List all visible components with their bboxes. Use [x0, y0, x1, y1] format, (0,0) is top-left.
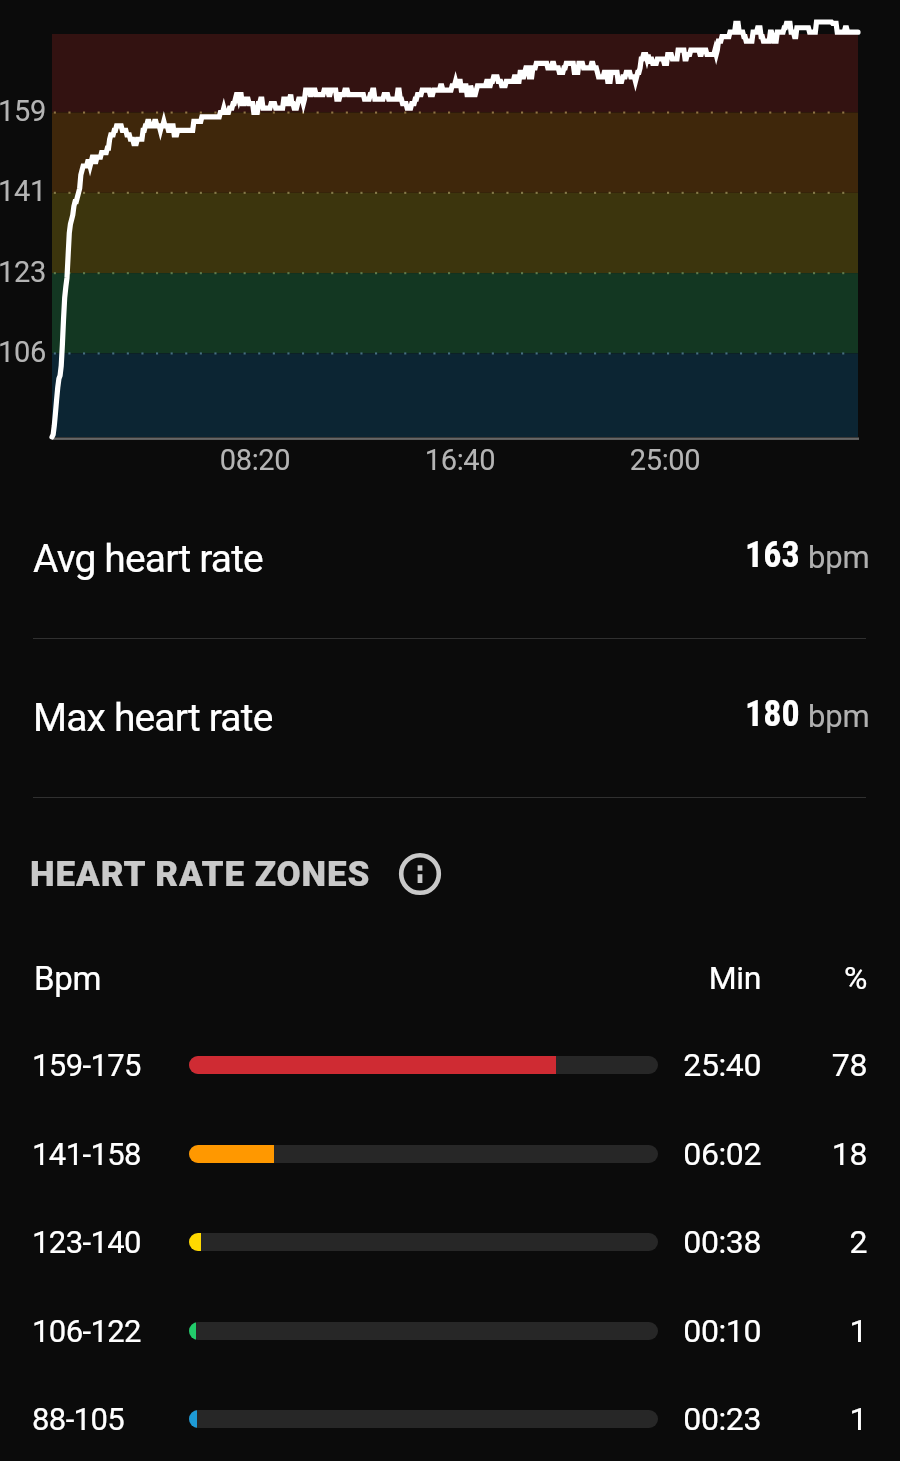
- staticText: 00:23: [611, 1400, 761, 1438]
- staticText: 88-105: [32, 1401, 125, 1437]
- staticText: Max heart rate: [33, 695, 273, 741]
- button[interactable]: Avg heart rate: [0, 519, 900, 599]
- staticText: bpm: [808, 698, 870, 734]
- staticText: 00:38: [611, 1223, 761, 1261]
- staticText: 18: [767, 1135, 867, 1173]
- staticText: Avg heart rate: [33, 536, 263, 582]
- staticText: 159-175: [32, 1047, 141, 1083]
- staticText: Bpm: [34, 959, 102, 998]
- staticText: %: [767, 959, 867, 997]
- staticText: 141-158: [32, 1136, 141, 1172]
- staticText: HEART RATE ZONES: [30, 854, 371, 895]
- staticText: 2: [767, 1223, 867, 1261]
- staticText: 106-122: [32, 1313, 141, 1349]
- staticText: 1: [767, 1312, 867, 1350]
- staticText: 159: [0, 94, 46, 128]
- staticText: 25:00: [595, 443, 735, 477]
- staticText: 25:40: [611, 1046, 761, 1084]
- button[interactable]: HEART RATE ZONES: [22, 844, 448, 904]
- button[interactable]: 141-158: [0, 1122, 900, 1186]
- staticText: 141: [0, 174, 46, 208]
- staticText: 06:02: [611, 1135, 761, 1173]
- staticText: 163: [745, 534, 800, 576]
- button[interactable]: 159-175: [0, 1033, 900, 1097]
- staticText: 08:20: [185, 443, 325, 477]
- button[interactable]: 88-105: [0, 1387, 900, 1451]
- staticText: bpm: [808, 539, 870, 575]
- staticText: 1: [767, 1400, 867, 1438]
- button[interactable]: 123-140: [0, 1210, 900, 1274]
- button[interactable]: Heart rate zones information: [392, 846, 448, 902]
- staticText: 123-140: [32, 1224, 141, 1260]
- staticText: 78: [767, 1046, 867, 1084]
- button[interactable]: Max heart rate: [0, 678, 900, 758]
- staticText: 123: [0, 255, 46, 289]
- staticText: 106: [0, 335, 46, 369]
- staticText: 180: [745, 693, 800, 735]
- staticText: 00:10: [611, 1312, 761, 1350]
- staticText: Min: [611, 959, 761, 997]
- staticText: 16:40: [390, 443, 530, 477]
- button[interactable]: 106-122: [0, 1299, 900, 1363]
